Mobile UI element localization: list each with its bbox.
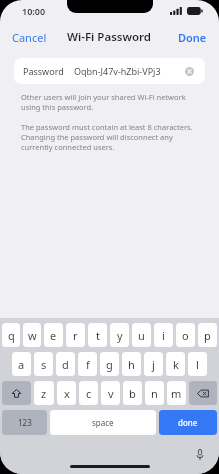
button[interactable]: j [144,352,163,376]
staticText: y [117,328,123,343]
staticText: l [196,357,199,372]
staticText: o [182,328,189,343]
button[interactable]: Backspace [189,381,217,405]
staticText: 123 [18,417,32,428]
button[interactable]: Done [166,24,219,51]
button[interactable]: 123 [2,410,47,435]
button[interactable]: f [78,352,97,376]
staticText: t [96,328,100,343]
button[interactable]: Shift [2,381,31,405]
button[interactable]: s [34,352,53,376]
button[interactable]: o [176,323,195,347]
button[interactable]: y [110,323,129,347]
button[interactable]: d [56,352,75,376]
button[interactable]: g [100,352,119,376]
staticText: z [41,386,47,401]
staticText: v [108,386,114,401]
button[interactable]: i [154,323,173,347]
button[interactable]: l [188,352,207,376]
staticText: Password [23,65,64,77]
button[interactable]: h [122,352,141,376]
staticText: u [138,328,145,343]
button[interactable]: e [44,323,63,347]
staticText: i [162,328,165,343]
button[interactable]: Clear text [182,64,196,78]
button[interactable]: Cancel [0,24,59,51]
staticText: m [171,386,182,401]
button[interactable]: r [66,323,85,347]
staticText: 10:00 [22,5,46,17]
button[interactable]: done [159,410,217,435]
staticText: Other users will join your shared Wi-Fi … [21,92,198,112]
staticText: Oqbn-J47v-hZbi-VPj3 [74,65,182,77]
button[interactable]: Password [14,58,205,84]
staticText: x [64,386,70,401]
button[interactable]: x [57,381,76,405]
button[interactable]: space [50,410,156,435]
staticText: Cancel [12,30,47,45]
button[interactable]: p [198,323,217,347]
staticText: w [28,328,37,343]
button[interactable]: u [132,323,151,347]
button[interactable]: v [101,381,120,405]
staticText: h [128,357,135,372]
staticText: j [152,357,155,372]
staticText: g [106,357,113,372]
staticText: The password must contain at least 8 cha… [21,122,198,152]
button[interactable]: z [34,381,54,405]
staticText: Wi-Fi Password [67,29,152,45]
button[interactable]: n [145,381,164,405]
button[interactable]: b [123,381,142,405]
staticText: n [151,386,158,401]
staticText: e [50,328,57,343]
staticText: f [86,357,90,372]
staticText: b [129,386,136,401]
button[interactable]: q [2,323,20,347]
button[interactable]: w [23,323,41,347]
button[interactable]: t [88,323,107,347]
staticText: c [86,386,92,401]
button[interactable]: Dictation [191,445,209,463]
staticText: q [8,328,15,343]
staticText: p [204,328,211,343]
staticText: Done [178,30,207,45]
staticText: r [73,328,78,343]
button[interactable]: c [79,381,98,405]
button[interactable]: m [167,381,186,405]
staticText: k [173,357,179,372]
staticText: a [18,357,25,372]
button[interactable]: k [166,352,185,376]
staticText: d [62,357,69,372]
staticText: done [178,417,198,428]
staticText: space [92,417,114,428]
staticText: s [41,357,47,372]
button[interactable]: a [12,352,31,376]
